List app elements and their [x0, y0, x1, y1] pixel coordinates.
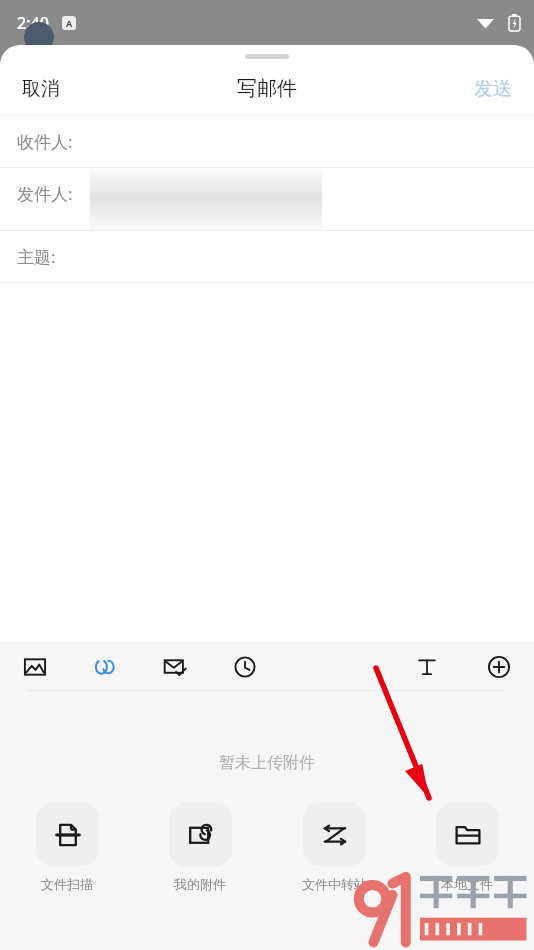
button[interactable]: 发送 [452, 67, 534, 111]
staticText: 发件人: [17, 182, 73, 205]
button[interactable]: 发件人: [0, 168, 534, 219]
button[interactable]: More options [482, 650, 516, 684]
button[interactable]: 取消 [0, 67, 82, 111]
button[interactable]: Schedule send [228, 650, 262, 684]
button[interactable]: 文件扫描 [21, 803, 113, 892]
button[interactable]: Text format [410, 650, 444, 684]
staticText: 我的附件 [174, 876, 226, 892]
staticText: 发送 [474, 77, 512, 101]
staticText: 文件扫描 [41, 876, 93, 892]
button[interactable]: 我的附件 [154, 803, 246, 892]
button[interactable]: 收件人: [0, 116, 534, 167]
staticText: 主题: [17, 245, 56, 268]
button[interactable]: 主题: [0, 231, 534, 282]
staticText: 取消 [22, 77, 60, 101]
staticText: 暂未上传附件 [219, 753, 315, 773]
button[interactable]: Read receipt [158, 650, 192, 684]
staticText: 文件中转站 [302, 876, 367, 892]
staticText: 2:40 [17, 12, 49, 34]
button[interactable]: Signature [88, 650, 122, 684]
button[interactable]: Insert image [18, 650, 52, 684]
staticText: A [66, 17, 73, 29]
staticText: 写邮件 [237, 76, 297, 101]
button[interactable]: 本地文件 [421, 803, 513, 892]
staticText: 收件人: [17, 130, 73, 153]
staticText: 本地文件 [441, 876, 493, 892]
button[interactable]: 文件中转站 [288, 803, 380, 892]
